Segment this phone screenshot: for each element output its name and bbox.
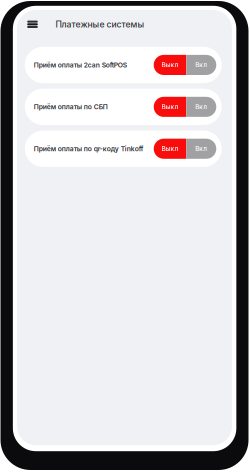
staticText: Выкл bbox=[161, 61, 178, 69]
button[interactable]: Приём оплаты 2can SoftPOS bbox=[25, 47, 222, 83]
button[interactable]: Вкл bbox=[186, 97, 216, 117]
button[interactable]: Приём оплаты по СБП bbox=[25, 89, 222, 125]
staticText: Приём оплаты по qr-коду Tinkoff bbox=[34, 145, 144, 153]
button[interactable]: Приём оплаты по qr-коду Tinkoff bbox=[25, 131, 222, 167]
staticText: Платежные системы bbox=[56, 19, 145, 30]
button[interactable]: Menu bbox=[22, 15, 43, 33]
staticText: Приём оплаты по СБП bbox=[34, 103, 108, 111]
button[interactable]: Выкл bbox=[154, 139, 186, 159]
button[interactable]: Выкл bbox=[154, 97, 186, 117]
staticText: Вкл bbox=[195, 145, 207, 153]
staticText: Вкл bbox=[195, 103, 207, 111]
staticText: Приём оплаты 2can SoftPOS bbox=[34, 61, 127, 69]
button[interactable]: Вкл bbox=[186, 139, 216, 159]
staticText: Вкл bbox=[195, 61, 207, 69]
staticText: Выкл bbox=[161, 145, 178, 153]
button[interactable]: Вкл bbox=[186, 55, 216, 75]
button[interactable]: Выкл bbox=[154, 55, 186, 75]
staticText: Выкл bbox=[161, 103, 178, 111]
